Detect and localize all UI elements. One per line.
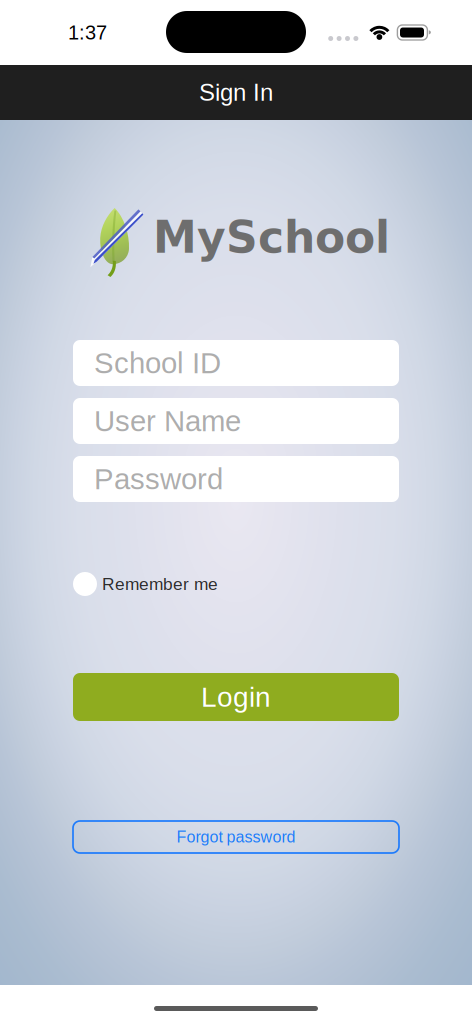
staticText: Sign In	[199, 79, 273, 106]
button[interactable]: Forgot password	[73, 821, 399, 853]
staticText: Password	[94, 463, 223, 495]
button[interactable]: Password	[73, 456, 399, 502]
staticText: Login	[201, 681, 271, 713]
staticText: User Name	[94, 405, 241, 437]
staticText: Remember me	[102, 574, 218, 594]
staticText: MySchool	[153, 212, 390, 263]
staticText: Forgot password	[176, 828, 295, 846]
button[interactable]: Login	[73, 673, 399, 721]
button[interactable]: Remember me	[73, 572, 399, 596]
staticText: School ID	[94, 347, 221, 379]
button[interactable]: School ID	[73, 340, 399, 386]
staticText: 1:37	[68, 21, 107, 44]
button[interactable]: User Name	[73, 398, 399, 444]
